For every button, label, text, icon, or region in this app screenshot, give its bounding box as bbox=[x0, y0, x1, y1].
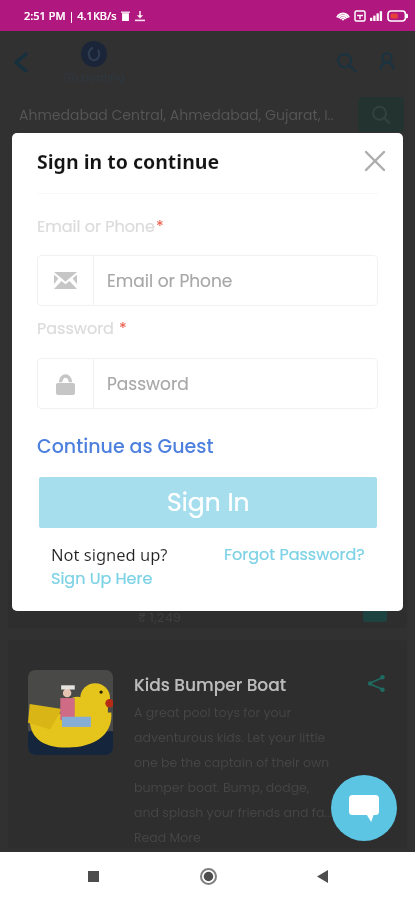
staticText: * bbox=[119, 317, 127, 339]
staticText: Sign Up Here bbox=[51, 567, 153, 589]
staticText: Password bbox=[107, 372, 189, 396]
staticText: Sign In bbox=[167, 485, 250, 520]
staticText: Email or Phone bbox=[37, 215, 156, 237]
button[interactable]: Search location bbox=[358, 97, 404, 132]
button[interactable]: Sign In bbox=[39, 477, 377, 528]
button[interactable]: Close bbox=[359, 145, 391, 177]
staticText: Continue as Guest bbox=[37, 433, 214, 460]
staticText: Kids Bumper Boat bbox=[134, 673, 287, 697]
button[interactable]: Back bbox=[3, 44, 39, 80]
button[interactable]: Password bbox=[37, 358, 378, 409]
staticText: ₹ 1,249 bbox=[138, 608, 182, 626]
button[interactable]: Profile bbox=[370, 45, 404, 79]
button[interactable]: Search bbox=[329, 45, 363, 79]
button[interactable]: Share bbox=[361, 668, 391, 698]
button[interactable]: Chat bbox=[331, 775, 397, 841]
button[interactable]: Continue as Guest bbox=[37, 433, 214, 460]
staticText: * bbox=[156, 215, 164, 237]
button[interactable]: Home bbox=[186, 854, 230, 898]
staticText: 2:51 PM | 4.1KB/s bbox=[24, 8, 117, 23]
button[interactable]: Recents bbox=[71, 854, 115, 898]
staticText: Go boating bbox=[63, 69, 125, 84]
button[interactable]: Forgot Password? bbox=[224, 543, 365, 565]
button[interactable]: Kids Bumper Boat bbox=[8, 640, 407, 848]
staticText: Password bbox=[37, 317, 114, 339]
staticText: A great pool toys for your adventurous k… bbox=[134, 704, 333, 847]
button[interactable]: Back bbox=[300, 854, 344, 898]
staticText: Email or Phone bbox=[107, 269, 233, 293]
staticText: Not signed up? bbox=[51, 543, 168, 565]
staticText: Sign in to continue bbox=[37, 148, 220, 175]
staticText: Ahmedabad Central, Ahmedabad, Gujarat, I… bbox=[19, 105, 334, 125]
button[interactable]: Email or Phone bbox=[37, 255, 378, 306]
staticText: Forgot Password? bbox=[224, 543, 365, 565]
button[interactable]: Sign Up Here bbox=[51, 567, 153, 589]
